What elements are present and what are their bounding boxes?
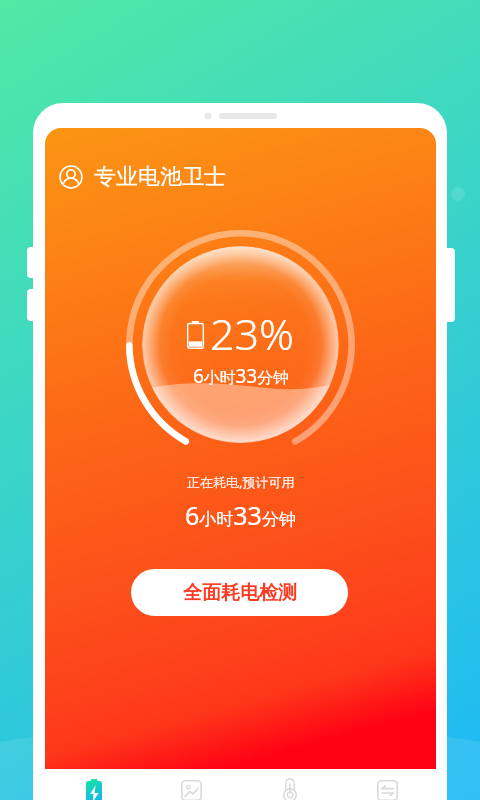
staticText: 6小时33分钟 xyxy=(193,363,289,389)
staticText: 正在耗电,预计可用 xyxy=(187,473,295,491)
staticText: 全面耗电检测 xyxy=(183,581,297,605)
button[interactable]: Temperature xyxy=(241,769,338,800)
staticText: 23% xyxy=(210,304,295,363)
button[interactable]: Stats xyxy=(143,769,240,800)
button[interactable]: Transfer xyxy=(339,769,436,800)
button[interactable]: Account xyxy=(59,163,226,191)
other: Account xyxy=(59,165,83,189)
button[interactable]: Battery xyxy=(45,769,142,800)
staticText: 6小时33分钟 xyxy=(185,498,296,532)
staticText: 专业电池卫士 xyxy=(94,163,226,191)
button[interactable]: 全面耗电检测 xyxy=(131,569,348,616)
